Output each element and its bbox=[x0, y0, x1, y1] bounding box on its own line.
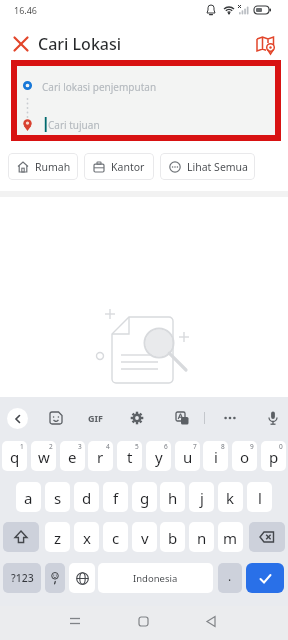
staticText: o bbox=[240, 447, 250, 467]
staticText: 8 bbox=[221, 442, 225, 451]
staticText: z bbox=[54, 528, 62, 548]
staticText: 5 bbox=[135, 442, 139, 451]
staticText: p bbox=[269, 447, 279, 467]
button[interactable]: f bbox=[103, 482, 128, 512]
button[interactable]: o bbox=[232, 441, 257, 471]
staticText: m bbox=[223, 528, 238, 548]
staticText: v bbox=[141, 528, 149, 548]
button[interactable]: w bbox=[31, 441, 56, 471]
button[interactable]: i bbox=[203, 441, 228, 471]
button[interactable] bbox=[7, 408, 28, 429]
button[interactable]: Indonesia bbox=[98, 563, 213, 593]
button[interactable] bbox=[172, 408, 192, 428]
button[interactable] bbox=[128, 606, 158, 640]
button[interactable]: x bbox=[74, 522, 99, 552]
staticText: u bbox=[183, 447, 193, 467]
button[interactable] bbox=[69, 563, 95, 593]
button[interactable]: r bbox=[88, 441, 113, 471]
button[interactable]: Lihat Semua bbox=[160, 153, 255, 180]
button[interactable]: . bbox=[218, 563, 242, 593]
staticText: 6 bbox=[164, 442, 168, 451]
button[interactable]: s bbox=[45, 482, 70, 512]
staticText: . bbox=[228, 568, 232, 584]
staticText: c bbox=[112, 528, 120, 548]
button[interactable]: Kantor bbox=[84, 153, 154, 180]
button[interactable] bbox=[17, 66, 275, 101]
button[interactable] bbox=[8, 31, 34, 57]
staticText: b bbox=[168, 528, 178, 548]
button[interactable]: u bbox=[175, 441, 200, 471]
button[interactable]: z bbox=[45, 522, 70, 552]
button[interactable] bbox=[251, 30, 281, 60]
staticText: ?123 bbox=[11, 571, 34, 585]
button[interactable]: v bbox=[132, 522, 157, 552]
staticText: 1 bbox=[20, 442, 24, 451]
button[interactable] bbox=[45, 563, 65, 593]
button[interactable] bbox=[127, 408, 147, 428]
button[interactable] bbox=[3, 522, 39, 552]
button[interactable] bbox=[17, 101, 275, 136]
button[interactable] bbox=[249, 522, 285, 552]
button[interactable] bbox=[262, 407, 283, 428]
staticText: d bbox=[82, 488, 92, 508]
button[interactable]: q bbox=[2, 441, 27, 471]
button[interactable]: d bbox=[74, 482, 99, 512]
button[interactable]: t bbox=[117, 441, 142, 471]
staticText: k bbox=[226, 488, 235, 508]
button[interactable]: e bbox=[60, 441, 85, 471]
staticText: s bbox=[54, 488, 62, 508]
staticText: Cari Lokasi bbox=[38, 33, 122, 55]
staticText: g bbox=[140, 488, 150, 508]
staticText: x bbox=[83, 528, 91, 548]
staticText: 3 bbox=[78, 442, 82, 451]
button[interactable]: n bbox=[189, 522, 214, 552]
staticText: Cari lokasi penjemputan bbox=[42, 80, 157, 94]
staticText: Kantor bbox=[111, 160, 145, 174]
staticText: 0 bbox=[279, 442, 283, 451]
staticText: 16.46 bbox=[14, 4, 38, 16]
staticText: e bbox=[68, 447, 77, 467]
staticText: j bbox=[200, 488, 204, 508]
button[interactable] bbox=[246, 563, 284, 593]
button[interactable]: h bbox=[160, 482, 185, 512]
staticText: Cari tujuan bbox=[48, 118, 100, 132]
button[interactable]: j bbox=[189, 482, 214, 512]
staticText: Rumah bbox=[35, 160, 71, 174]
button[interactable]: y bbox=[146, 441, 171, 471]
staticText: GIF bbox=[88, 412, 103, 424]
button[interactable] bbox=[220, 408, 240, 428]
staticText: f bbox=[113, 488, 119, 508]
button[interactable]: l bbox=[247, 482, 272, 512]
staticText: Lihat Semua bbox=[187, 160, 248, 174]
staticText: 9 bbox=[250, 442, 254, 451]
button[interactable]: g bbox=[132, 482, 157, 512]
staticText: t bbox=[127, 447, 133, 467]
staticText: 2 bbox=[49, 442, 53, 451]
staticText: q bbox=[10, 447, 20, 467]
button[interactable]: p bbox=[261, 441, 286, 471]
staticText: a bbox=[24, 488, 33, 508]
button[interactable] bbox=[196, 606, 226, 640]
staticText: 4 bbox=[106, 442, 110, 451]
staticText: w bbox=[38, 447, 50, 467]
button[interactable]: ?123 bbox=[3, 563, 41, 593]
button[interactable]: k bbox=[218, 482, 243, 512]
button[interactable] bbox=[60, 606, 90, 640]
staticText: l bbox=[258, 488, 262, 508]
button[interactable]: m bbox=[218, 522, 243, 552]
staticText: 7 bbox=[193, 442, 197, 451]
staticText: r bbox=[97, 447, 104, 467]
staticText: n bbox=[197, 528, 207, 548]
button[interactable]: b bbox=[160, 522, 185, 552]
staticText: y bbox=[155, 447, 163, 467]
button[interactable] bbox=[46, 408, 66, 428]
button[interactable]: Rumah bbox=[8, 153, 78, 180]
staticText: i bbox=[214, 447, 218, 467]
button[interactable]: c bbox=[103, 522, 128, 552]
staticText: Indonesia bbox=[133, 572, 178, 585]
button[interactable]: a bbox=[16, 482, 41, 512]
staticText: h bbox=[168, 488, 178, 508]
